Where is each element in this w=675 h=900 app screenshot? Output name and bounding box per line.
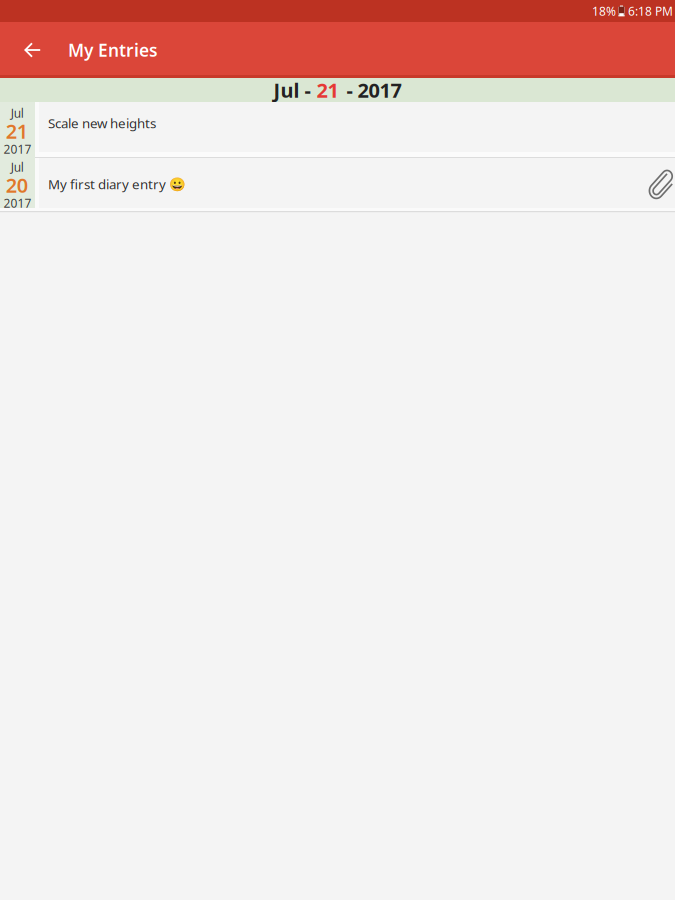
button[interactable]: Back [24, 22, 41, 78]
staticText: My Entries [68, 38, 158, 61]
staticText: 20 [6, 172, 28, 198]
staticText: Jul [11, 159, 24, 175]
staticText: 21 [316, 77, 338, 103]
staticText: 21 [6, 118, 28, 144]
staticText: Scale new heights [48, 114, 156, 132]
staticText: - 2017 [346, 77, 401, 103]
staticText: 2017 [4, 195, 32, 211]
staticText: 2017 [4, 141, 32, 157]
button[interactable]: Jul [0, 102, 675, 208]
staticText: 6:18 PM [628, 3, 673, 19]
staticText: My first diary entry 😀 [48, 175, 186, 193]
staticText: 18% [592, 3, 616, 19]
button[interactable]: Jul [0, 102, 675, 208]
staticText: Jul [11, 105, 24, 121]
staticText: Jul - [273, 77, 310, 103]
